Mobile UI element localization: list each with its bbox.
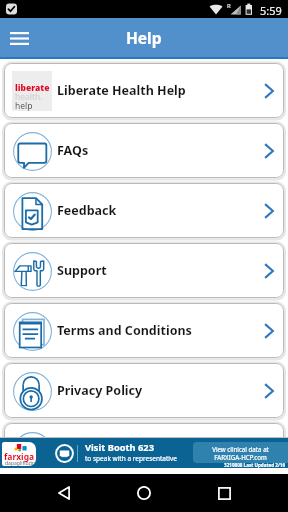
button[interactable]: Terms and Conditions — [4, 303, 284, 358]
staticText: View clinical data at — [212, 445, 269, 453]
staticText: 5:59 — [260, 3, 282, 18]
button[interactable]: Contact Us — [4, 423, 284, 437]
staticText: 3219808 Last Updated 2/16 — [224, 462, 286, 468]
button[interactable]: Recent apps — [204, 474, 244, 512]
staticText: dapagliflozin — [5, 460, 36, 466]
staticText: Help — [126, 27, 162, 48]
staticText: Terms and Conditions — [57, 322, 192, 339]
staticText: FARXIGA-HCP.com — [214, 453, 267, 461]
staticText: Visit Booth 623 — [85, 441, 154, 454]
staticText: Privacy Policy — [57, 382, 143, 399]
staticText: help — [15, 100, 33, 112]
staticText: liberate — [15, 82, 50, 94]
button[interactable]: Home — [124, 474, 164, 512]
staticText: FAQs — [57, 142, 89, 159]
staticText: to speak with a representative — [85, 454, 177, 463]
staticText: farxiga — [4, 451, 35, 463]
button[interactable]: liberate — [4, 63, 284, 118]
button[interactable]: Farxiga advertisement — [0, 438, 288, 468]
button[interactable]: Feedback — [4, 183, 284, 238]
button[interactable]: Privacy Policy — [4, 363, 284, 418]
button[interactable]: Support — [4, 243, 284, 298]
staticText: Liberate Health Help — [57, 82, 186, 99]
button[interactable]: FAQs — [4, 123, 284, 178]
button[interactable]: Open navigation menu — [5, 24, 34, 53]
staticText: Feedback — [57, 202, 117, 219]
staticText: health. — [15, 91, 43, 103]
button[interactable]: Back — [44, 474, 84, 512]
staticText: Support — [57, 262, 107, 279]
staticText: R — [227, 2, 231, 10]
